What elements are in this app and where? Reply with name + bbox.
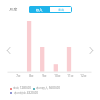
staticText: 月度 — [9, 7, 18, 12]
staticText: 10月 — [54, 74, 61, 78]
button[interactable]: 月度 — [9, 7, 18, 12]
staticText: 支出 1280.00 — [13, 86, 31, 90]
button[interactable]: Previous month — [3, 44, 15, 56]
staticText: 本月结余 4320.00 — [14, 91, 38, 95]
staticText: 收入 — [36, 8, 43, 12]
staticText: 11月 — [67, 74, 74, 78]
staticText: 本月收入 5600.00 — [36, 86, 60, 90]
button[interactable]: 收入 — [29, 6, 50, 13]
button[interactable]: 支出 — [50, 6, 72, 13]
button[interactable]: Next month — [85, 44, 97, 56]
staticText: 7月 — [16, 74, 21, 78]
staticText: 9月 — [42, 74, 47, 78]
staticText: 8月 — [29, 74, 34, 78]
staticText: 支出 — [58, 8, 65, 12]
staticText: 12月 — [80, 74, 87, 78]
